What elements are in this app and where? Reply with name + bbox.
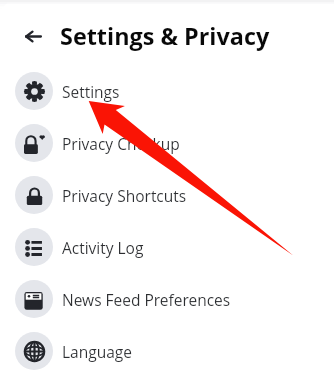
staticText: Privacy Shortcuts bbox=[62, 185, 187, 206]
button[interactable]: Back bbox=[17, 20, 49, 52]
staticText: Activity Log bbox=[62, 237, 144, 258]
button[interactable]: Privacy Shortcuts bbox=[0, 169, 334, 221]
button[interactable]: Settings bbox=[0, 65, 334, 117]
staticText: Language bbox=[62, 341, 132, 362]
staticText: Settings & Privacy bbox=[60, 20, 270, 52]
staticText: Privacy Checkup bbox=[62, 133, 180, 154]
staticText: Settings bbox=[62, 81, 120, 102]
button[interactable]: Language bbox=[0, 325, 334, 376]
button[interactable]: News Feed Preferences bbox=[0, 273, 334, 325]
button[interactable]: Privacy Checkup bbox=[0, 117, 334, 169]
button[interactable]: Activity Log bbox=[0, 221, 334, 273]
staticText: News Feed Preferences bbox=[62, 289, 231, 310]
